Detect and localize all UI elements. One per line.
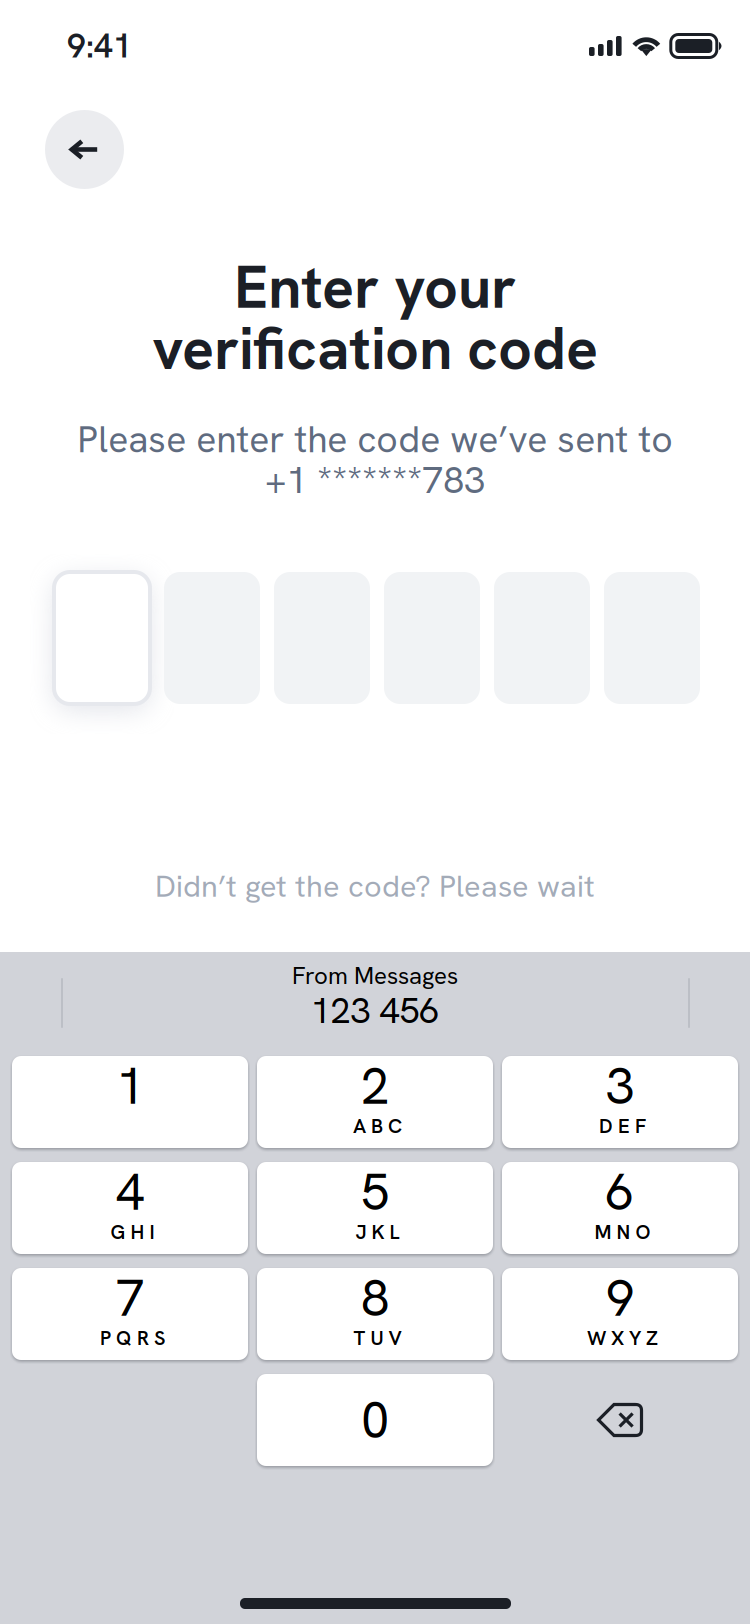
staticText: 8 [361, 1265, 389, 1331]
staticText: 6 [606, 1159, 634, 1225]
staticText: 9 [606, 1265, 634, 1331]
staticText: 3 [606, 1053, 634, 1119]
staticText: Enter your verification code [152, 249, 598, 387]
staticText: From Messages [292, 960, 458, 991]
staticText: WXYZ [587, 1325, 658, 1351]
staticText: JKL [355, 1219, 399, 1245]
staticText: 7 [116, 1265, 144, 1331]
staticText: 2 [361, 1053, 389, 1119]
staticText: 1 [116, 1053, 144, 1119]
button[interactable]: 4 [12, 1162, 248, 1254]
staticText: 123 456 [310, 987, 439, 1034]
staticText: Didn’t get the code? Please wait [155, 866, 595, 906]
button[interactable]: 0 [257, 1374, 493, 1466]
staticText: 9:41 [67, 24, 132, 68]
button[interactable]: 1 [12, 1056, 248, 1148]
button[interactable]: Delete [502, 1374, 738, 1466]
staticText: MNO [594, 1219, 650, 1245]
button[interactable]: 8 [257, 1268, 493, 1360]
staticText: Please enter the code we’ve sent to +1 *… [77, 415, 673, 504]
staticText: 5 [361, 1159, 389, 1225]
button[interactable]: 3 [502, 1056, 738, 1148]
staticText: GHI [110, 1219, 154, 1245]
button[interactable]: Code digit 1 [54, 572, 150, 704]
button[interactable]: 6 [502, 1162, 738, 1254]
button[interactable]: 7 [12, 1268, 248, 1360]
staticText: TUV [353, 1325, 401, 1351]
staticText: 0 [361, 1387, 389, 1453]
button[interactable]: 9 [502, 1268, 738, 1360]
staticText: PQRS [100, 1325, 165, 1351]
staticText: 4 [116, 1159, 144, 1225]
button[interactable]: 2 [257, 1056, 493, 1148]
staticText: ABC [353, 1113, 402, 1139]
staticText: DEF [599, 1113, 646, 1139]
button[interactable]: Back [45, 110, 124, 189]
button[interactable]: 5 [257, 1162, 493, 1254]
